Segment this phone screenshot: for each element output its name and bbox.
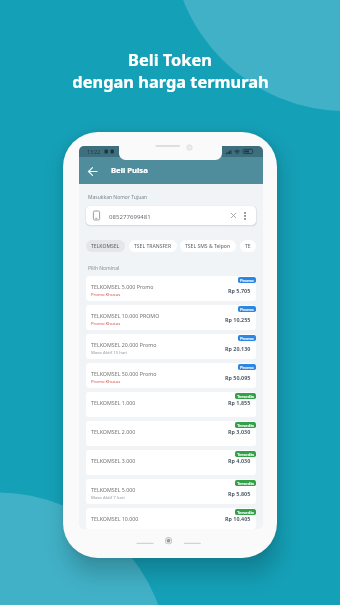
button[interactable]: TELKOMSEL	[240, 240, 256, 252]
staticText: Promo	[240, 277, 254, 283]
staticText: TSEL SMS & Telpon	[185, 243, 231, 250]
button[interactable]: TELKOMSEL	[86, 240, 125, 252]
staticText: Promo Khusus	[91, 291, 121, 297]
staticText: Promo Khusus	[91, 320, 121, 326]
button[interactable]: TELKOMSEL 2.000	[86, 421, 256, 446]
staticText: Rp 4,030	[228, 457, 251, 464]
button[interactable]: TELKOMSEL 10.000 PROMO	[86, 305, 256, 330]
staticText: Tersedia	[237, 480, 254, 486]
button[interactable]: TELKOMSEL 1.000	[86, 392, 256, 417]
staticText: Tersedia	[237, 422, 254, 428]
button[interactable]: Clear	[228, 210, 239, 221]
staticText: 085277699481	[109, 212, 151, 220]
staticText: TELKOMSEL	[91, 243, 120, 250]
staticText: Beli Pulsa	[111, 165, 148, 175]
staticText: dengan harga termurah	[72, 70, 269, 92]
staticText: Tersedia	[237, 451, 254, 457]
button[interactable]: TELKOMSEL 20.000 Promo	[86, 334, 256, 359]
button[interactable]: Back	[86, 165, 98, 177]
staticText: TELKOMSEL 5.000	[91, 486, 136, 493]
staticText: TELKOMSEL 3.000	[91, 457, 136, 464]
staticText: Rp 10,255	[225, 316, 251, 323]
button[interactable]: TSEL TRANSFER	[129, 240, 177, 252]
staticText: TELKOMSEL 2.000	[91, 428, 136, 435]
staticText: Rp 20,130	[225, 345, 251, 352]
staticText: Masa Aktif 7 hari	[91, 494, 125, 500]
staticText: Rp 10,405	[225, 515, 251, 522]
button[interactable]: 085277699481	[86, 206, 256, 225]
staticText: Promo	[240, 306, 254, 312]
staticText: TSEL TRANSFER	[134, 243, 172, 250]
staticText: TELKOMSEL 1.000	[91, 399, 136, 406]
staticText: Tersedia	[237, 509, 254, 515]
staticText: Promo	[240, 364, 254, 370]
staticText: Rp 1,855	[228, 399, 251, 406]
button[interactable]: TELKOMSEL 5.000	[86, 479, 256, 504]
staticText: Tersedia	[237, 393, 254, 399]
staticText: Masukkan Nomor Tujuan	[88, 194, 148, 201]
button[interactable]: TELKOMSEL 5.000 Promo	[86, 276, 256, 301]
staticText: Pilih Nominal	[88, 265, 120, 272]
staticText: TELKOMSEL 50.000 Promo	[91, 370, 157, 377]
staticText: TELKOMSEL	[245, 243, 251, 250]
staticText: Promo	[240, 335, 254, 341]
button[interactable]: More options	[239, 210, 250, 221]
staticText: Promo Khusus	[91, 378, 121, 384]
staticText: TELKOMSEL 5.000 Promo	[91, 283, 154, 290]
button[interactable]: TSEL SMS & Telpon	[180, 240, 236, 252]
staticText: 13:22	[87, 148, 101, 155]
button[interactable]: TELKOMSEL 10.000	[86, 508, 256, 529]
staticText: Rp 3,030	[228, 428, 251, 435]
staticText: TELKOMSEL 10.000	[91, 515, 139, 522]
button[interactable]: TELKOMSEL 3.000	[86, 450, 256, 475]
staticText: Rp 5,705	[228, 287, 251, 294]
staticText: TELKOMSEL 20.000 Promo	[91, 341, 157, 348]
staticText: Rp 5,805	[228, 490, 251, 497]
staticText: Beli Token	[128, 48, 212, 70]
staticText: TELKOMSEL 10.000 PROMO	[91, 312, 160, 319]
staticText: Masa Aktif 15 hari	[91, 349, 128, 355]
button[interactable]: TELKOMSEL 50.000 Promo	[86, 363, 256, 388]
staticText: Rp 50,095	[225, 374, 251, 381]
